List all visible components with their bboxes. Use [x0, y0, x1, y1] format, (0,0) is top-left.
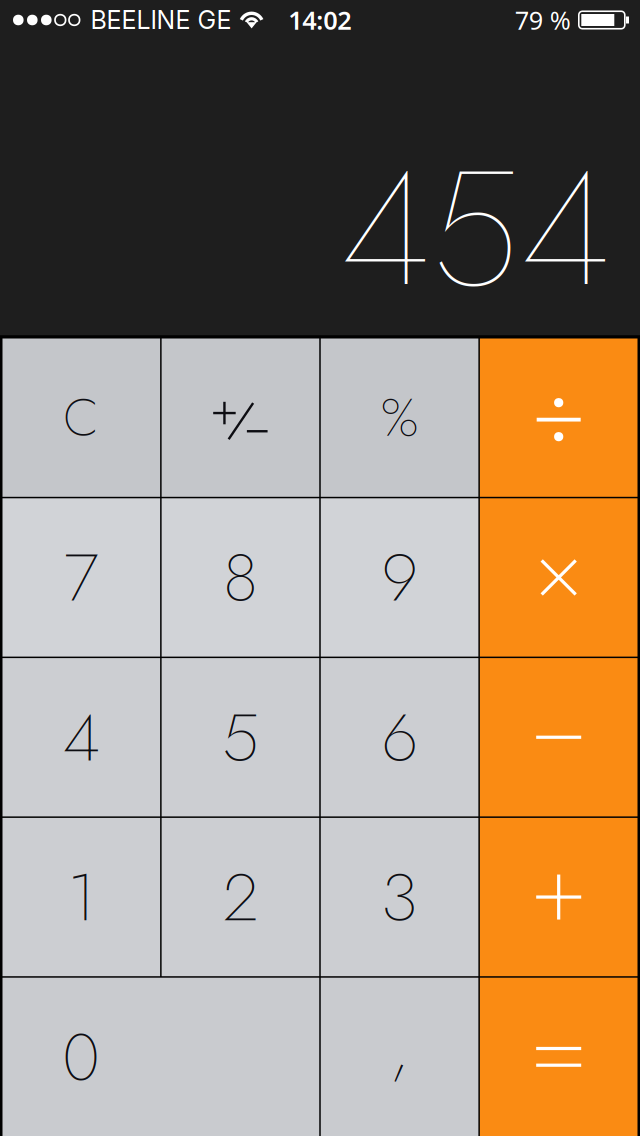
staticText: %	[381, 380, 418, 455]
button[interactable]: 5	[162, 658, 319, 816]
staticText: 2	[223, 849, 258, 945]
button[interactable]: Minus	[480, 658, 637, 816]
staticText: 1	[67, 849, 95, 945]
button[interactable]: 3	[321, 818, 478, 976]
button[interactable]: 4	[2, 658, 160, 816]
staticText: 14:02	[288, 3, 351, 37]
button[interactable]: Multiply	[480, 498, 637, 657]
staticText: 6	[382, 689, 418, 785]
button[interactable]: 8	[162, 498, 319, 657]
staticText: 3	[381, 849, 418, 945]
button[interactable]: Plus minus	[162, 338, 319, 497]
button[interactable]: 2	[162, 818, 319, 976]
staticText: ,	[390, 1000, 409, 1096]
staticText: 4	[63, 689, 100, 785]
staticText: 5	[222, 689, 259, 785]
staticText: 7	[64, 529, 99, 626]
button[interactable]: ,	[321, 978, 478, 1136]
button[interactable]: 0	[2, 978, 319, 1136]
button[interactable]: Plus	[480, 818, 637, 976]
button[interactable]: 6	[321, 658, 478, 816]
button[interactable]: %	[321, 338, 478, 497]
staticText: 9	[382, 529, 418, 626]
button[interactable]: 1	[2, 818, 160, 976]
staticText: 8	[223, 529, 258, 626]
staticText: BEELINE GE	[91, 5, 232, 35]
staticText: 0	[62, 1009, 100, 1105]
staticText: 454	[341, 112, 611, 345]
button[interactable]: C	[2, 338, 160, 497]
staticText: 79 %	[515, 3, 571, 37]
button[interactable]: Divide	[480, 338, 637, 497]
button[interactable]: Equals	[480, 978, 637, 1136]
button[interactable]: 9	[321, 498, 478, 657]
staticText: C	[63, 380, 99, 455]
button[interactable]: 7	[2, 498, 160, 657]
